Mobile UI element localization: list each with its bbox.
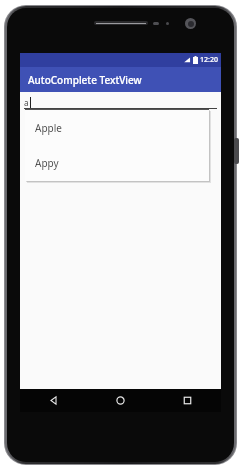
button[interactable]: Back [20,389,87,412]
staticText: Appy [35,156,59,170]
staticText: a [24,97,29,108]
button[interactable]: Home [87,389,154,412]
button[interactable]: a [24,96,217,109]
button[interactable]: Appy [25,145,209,181]
staticText: AutoComplete TextView [28,73,142,87]
button[interactable]: AutoComplete TextView [20,67,221,92]
button[interactable]: Apple [25,110,209,145]
button[interactable]: Recent apps [154,389,221,412]
staticText: Apple [35,121,62,135]
staticText: 12:20 [200,55,218,65]
